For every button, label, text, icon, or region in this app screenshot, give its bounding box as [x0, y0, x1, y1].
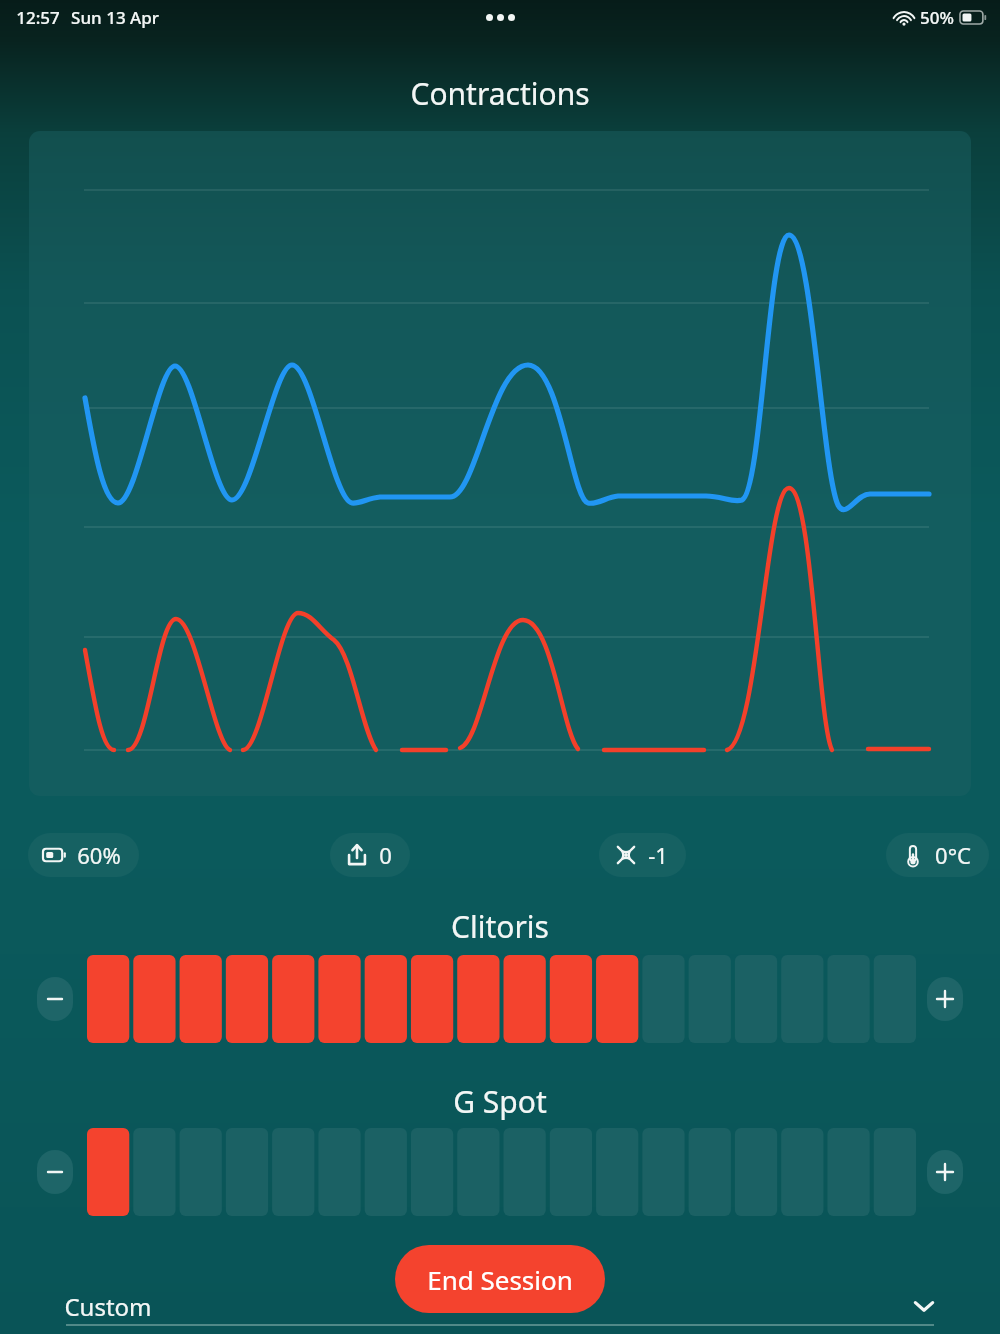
button[interactable]: Decrease Clitoris [37, 977, 73, 1021]
button[interactable]: Temperature [886, 833, 989, 877]
button[interactable]: Clitoris level [87, 955, 916, 1043]
button[interactable]: Increase G Spot [927, 1150, 963, 1194]
staticText: End Session [427, 1262, 573, 1297]
staticText: 60% [77, 840, 121, 870]
staticText: Sun 13 Apr [71, 6, 159, 29]
staticText: 0°C [935, 840, 971, 870]
staticText: Contractions [410, 73, 590, 114]
staticText: G Spot [453, 1081, 547, 1122]
button[interactable]: Increase Clitoris [927, 977, 963, 1021]
button[interactable]: End Session [395, 1245, 605, 1313]
button[interactable]: Signal [599, 833, 686, 877]
staticText: 50% [920, 6, 954, 29]
button[interactable]: Decrease G Spot [37, 1150, 73, 1194]
other: Expand [912, 1294, 936, 1318]
button[interactable]: Battery [28, 833, 139, 877]
button[interactable]: G Spot level [87, 1128, 916, 1216]
button[interactable] [29, 131, 971, 796]
staticText: -1 [648, 840, 668, 870]
button[interactable]: Custom [64, 1285, 936, 1327]
button[interactable]: Uploads [330, 833, 410, 877]
staticText: Custom [64, 1290, 152, 1323]
staticText: 0 [379, 840, 392, 870]
staticText: Clitoris [451, 906, 549, 947]
staticText: 12:57 [16, 6, 60, 29]
